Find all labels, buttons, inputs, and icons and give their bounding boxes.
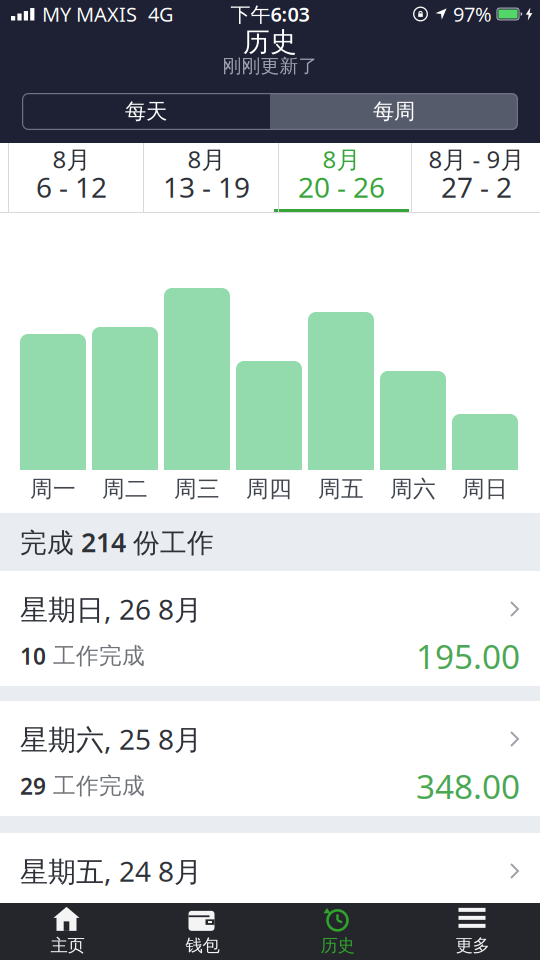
button[interactable]: 8月 - 9月 xyxy=(409,143,540,213)
staticText: 工作完成 xyxy=(46,772,145,800)
staticText: 8月 xyxy=(187,143,225,175)
staticText: 8月 - 9月 xyxy=(428,143,524,175)
staticText: 195.00 xyxy=(416,634,520,678)
staticText: 10 xyxy=(20,641,46,671)
staticText: 8月 xyxy=(322,143,360,175)
staticText: 27 - 2 xyxy=(441,168,512,206)
button[interactable]: 主页 xyxy=(0,903,135,960)
staticText: 下午6:03 xyxy=(230,1,309,27)
staticText: 8月 xyxy=(52,143,90,175)
staticText: 钱包 xyxy=(185,935,219,956)
button[interactable]: 历史 xyxy=(270,903,405,960)
button[interactable]: 每周 xyxy=(270,93,518,130)
staticText: 周一 xyxy=(30,475,76,503)
staticText: 20 - 26 xyxy=(298,168,385,206)
staticText: 97% xyxy=(453,1,492,27)
staticText: 主页 xyxy=(50,935,84,956)
staticText: 星期日, 26 8月 xyxy=(20,590,202,628)
staticText: 历史 xyxy=(320,935,354,956)
button[interactable]: 星期日, 26 8月 xyxy=(0,571,540,686)
staticText: 348.00 xyxy=(416,764,520,808)
staticText: 星期五, 24 8月 xyxy=(20,852,202,890)
staticText: 周五 xyxy=(318,475,364,503)
staticText: 每天 xyxy=(125,98,167,125)
button[interactable]: 星期六, 25 8月 xyxy=(0,701,540,816)
staticText: 每周 xyxy=(373,98,415,125)
button[interactable]: 8月 xyxy=(274,143,409,213)
staticText: 6 - 12 xyxy=(36,168,107,206)
staticText: 更多 xyxy=(455,935,489,956)
staticText: 13 - 19 xyxy=(163,168,250,206)
staticText: 29 xyxy=(20,771,46,801)
button[interactable]: 8月 xyxy=(139,143,274,213)
button[interactable]: 更多 xyxy=(405,903,540,960)
staticText: 星期六, 25 8月 xyxy=(20,720,202,758)
staticText: 4G xyxy=(148,1,174,27)
staticText: 周日 xyxy=(462,475,508,503)
button[interactable]: 每天 xyxy=(22,93,270,130)
staticText: 刚刚更新了 xyxy=(222,54,317,77)
staticText: 完成 214 份工作 xyxy=(20,524,214,560)
staticText: 历史 xyxy=(243,26,297,58)
staticText: 周四 xyxy=(246,475,292,503)
staticText: MY MAXIS xyxy=(42,1,137,27)
staticText: 工作完成 xyxy=(46,642,145,670)
button[interactable]: 8月 xyxy=(4,143,139,213)
staticText: 周三 xyxy=(174,475,220,503)
staticText: 周六 xyxy=(390,475,436,503)
button[interactable]: 星期五, 24 8月 xyxy=(0,833,540,903)
button[interactable]: 钱包 xyxy=(135,903,270,960)
staticText: 周二 xyxy=(102,475,148,503)
